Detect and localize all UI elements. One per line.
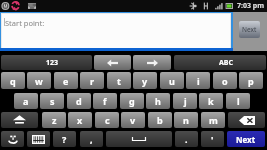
staticText: ABC [219, 58, 233, 68]
button[interactable]: f [93, 93, 117, 109]
staticText: ? [62, 133, 67, 145]
staticText: g [129, 95, 135, 107]
button[interactable]: Next [227, 131, 265, 147]
staticText: i [197, 75, 200, 87]
button[interactable]: p [239, 72, 263, 89]
staticText: t [117, 75, 121, 87]
staticText: c [105, 114, 110, 126]
button[interactable]: 123 [1, 55, 92, 70]
button[interactable]: Shift [1, 112, 38, 128]
button[interactable]: Switch keyboard [27, 131, 50, 147]
staticText: 7:03 pm [237, 1, 265, 11]
staticText: z [52, 114, 57, 126]
button[interactable]: y [133, 72, 157, 89]
button[interactable]: q [1, 72, 25, 89]
staticText: q [10, 75, 16, 87]
staticText: v [130, 114, 136, 126]
staticText: ' [211, 133, 214, 145]
staticText: a [23, 95, 29, 107]
staticText: l [237, 95, 240, 107]
staticText: n [183, 114, 189, 126]
button[interactable]: ? [53, 131, 76, 147]
staticText: e [63, 75, 69, 87]
button[interactable]: t [107, 72, 131, 89]
button[interactable]: u [160, 72, 184, 89]
button[interactable]: Start point: [2, 14, 230, 48]
button[interactable]: c [95, 112, 119, 128]
staticText: . [185, 133, 188, 145]
button[interactable]: s [40, 93, 64, 109]
button[interactable]: k [199, 93, 223, 109]
button[interactable]: m [201, 112, 225, 128]
button[interactable]: a [14, 93, 38, 109]
staticText: , [90, 133, 93, 145]
button[interactable]: Next field [133, 55, 171, 70]
button[interactable]: z [42, 112, 66, 128]
staticText: r [90, 75, 95, 87]
staticText: 123 [46, 58, 59, 68]
staticText: h [155, 95, 161, 107]
button[interactable]: Next [239, 21, 260, 38]
staticText: x [77, 114, 83, 126]
button[interactable]: w [27, 72, 51, 89]
button[interactable]: ' [201, 131, 224, 147]
staticText: j [184, 95, 187, 107]
staticText: f [103, 95, 107, 107]
staticText: y [142, 75, 148, 87]
button[interactable]: d [67, 93, 91, 109]
button[interactable]: x [68, 112, 92, 128]
button[interactable]: i [186, 72, 210, 89]
button[interactable]: b [148, 112, 172, 128]
button[interactable]: h [146, 93, 170, 109]
staticText: Next [242, 25, 257, 34]
staticText: m [209, 114, 218, 126]
button[interactable]: ABC [174, 55, 266, 70]
staticText: w [35, 75, 43, 87]
staticText: d [76, 95, 82, 107]
button[interactable]: v [121, 112, 145, 128]
button[interactable]: r [80, 72, 104, 89]
button[interactable]: . [175, 131, 198, 147]
button[interactable]: j [173, 93, 197, 109]
staticText: p [248, 75, 254, 87]
staticText: Start point: [5, 18, 45, 28]
button[interactable]: n [174, 112, 198, 128]
button[interactable]: Delete [228, 112, 265, 128]
staticText: u [169, 75, 175, 87]
button[interactable]: Previous [94, 55, 131, 70]
button[interactable]: Emoji [1, 131, 24, 147]
button[interactable]: e [54, 72, 78, 89]
button[interactable]: Space [106, 131, 172, 147]
staticText: o [222, 75, 228, 87]
button[interactable]: o [213, 72, 237, 89]
button[interactable]: , [80, 131, 103, 147]
staticText: s [50, 95, 55, 107]
button[interactable]: l [226, 93, 250, 109]
staticText: b [157, 114, 163, 126]
button[interactable]: g [120, 93, 144, 109]
staticText: Next [236, 134, 256, 145]
staticText: k [208, 95, 214, 107]
